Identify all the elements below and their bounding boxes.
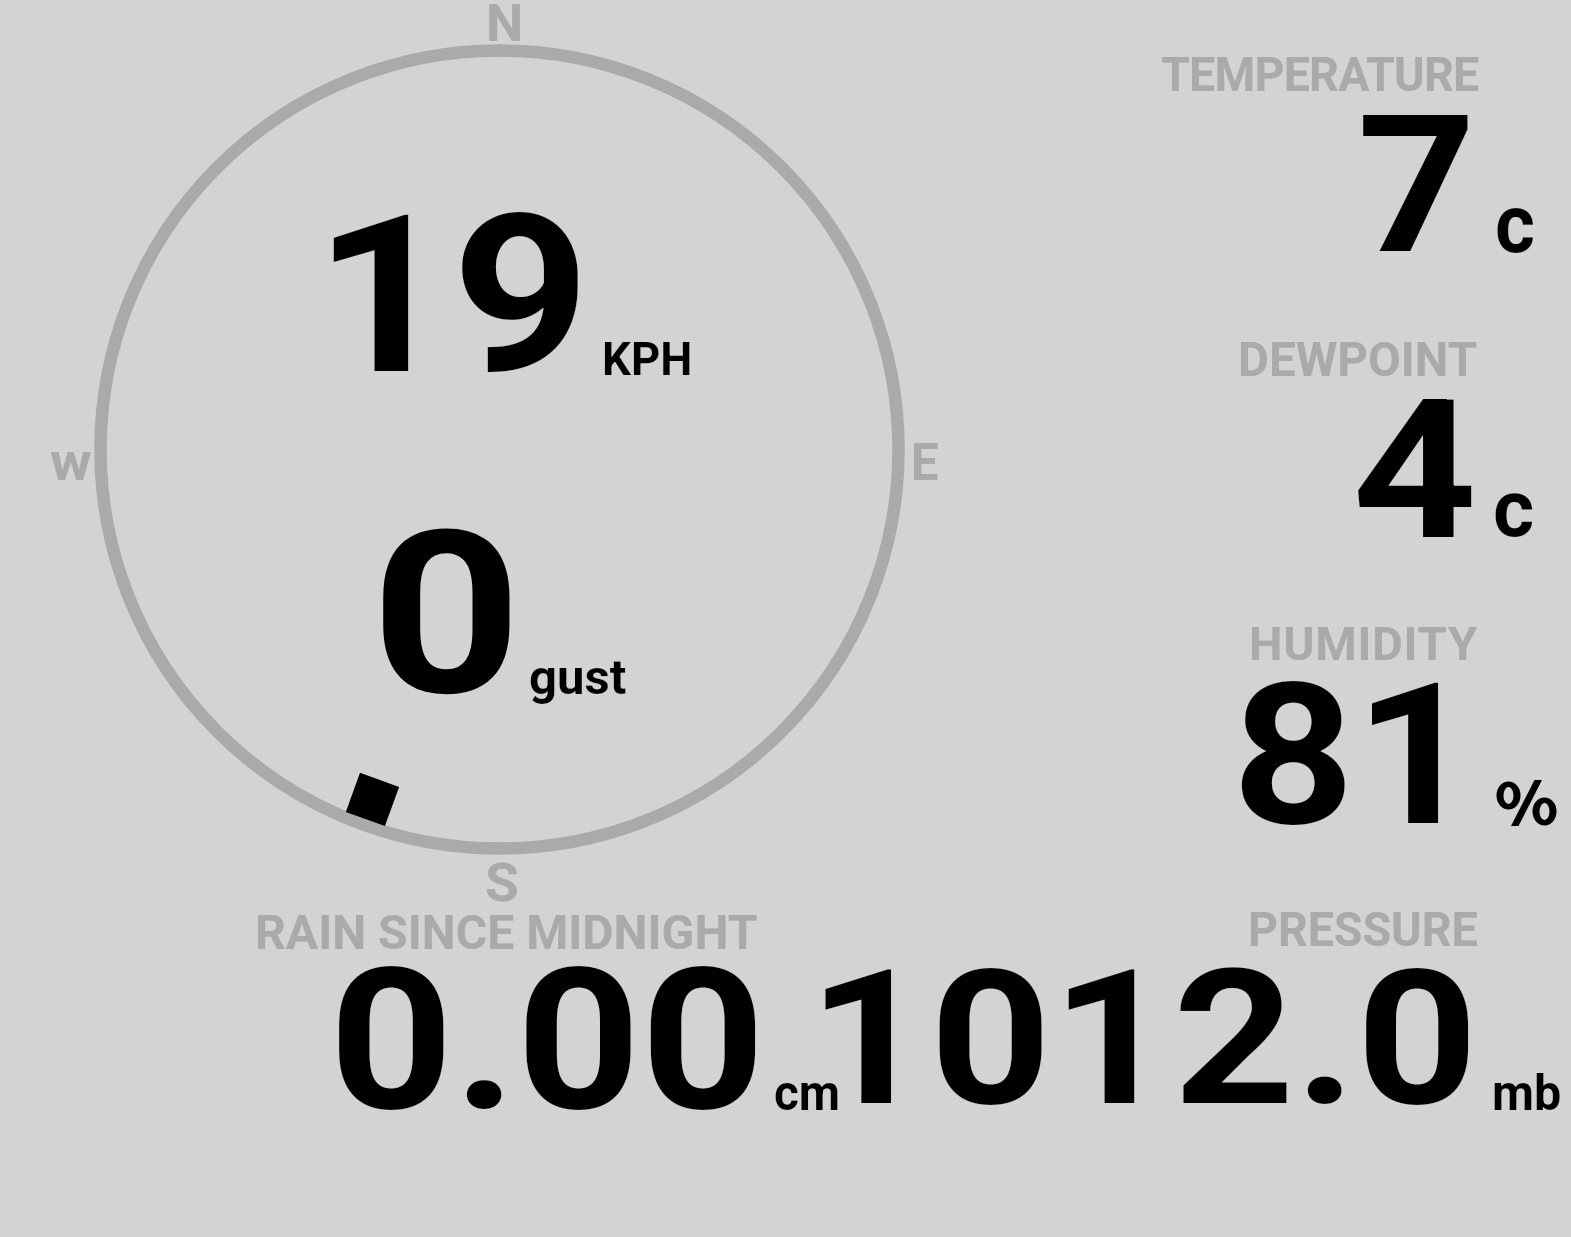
staticText: 0.00 <box>329 926 766 1156</box>
staticText: 81 <box>1232 641 1477 871</box>
staticText: 7 <box>1357 73 1477 298</box>
staticText: DEWPOINT <box>1238 331 1478 387</box>
button[interactable]: Rain since midnight 0.00 cm <box>252 903 792 1128</box>
staticText: S <box>485 852 519 914</box>
staticText: PRESSURE <box>1248 901 1478 957</box>
staticText: TEMPERATURE <box>1161 46 1479 102</box>
staticText: E <box>911 433 939 493</box>
staticText: mb <box>1492 1064 1562 1123</box>
staticText: c <box>1493 463 1535 556</box>
staticText: gust <box>529 649 627 705</box>
staticText: RAIN SINCE MIDNIGHT <box>255 904 758 960</box>
staticText: 1012.0 <box>808 929 1478 1149</box>
button[interactable]: Dewpoint 4 C <box>1140 330 1560 560</box>
staticText: c <box>1495 177 1536 272</box>
button[interactable]: Temperature 7 C <box>1140 45 1560 275</box>
staticText: w <box>50 433 92 493</box>
button[interactable]: Humidity 81 percent <box>1140 615 1560 845</box>
staticText: 0 <box>371 481 523 747</box>
button[interactable]: Pressure 1012.0 mb <box>800 900 1560 1125</box>
staticText: KPH <box>602 332 693 386</box>
staticText: N <box>486 0 523 54</box>
staticText: 4 <box>1352 358 1477 584</box>
staticText: 19 <box>314 168 591 425</box>
button[interactable]: Wind 19 KPH, gust 0, south-southwest <box>101 50 899 849</box>
staticText: HUMIDITY <box>1249 617 1479 671</box>
staticText: cm <box>774 1064 841 1123</box>
